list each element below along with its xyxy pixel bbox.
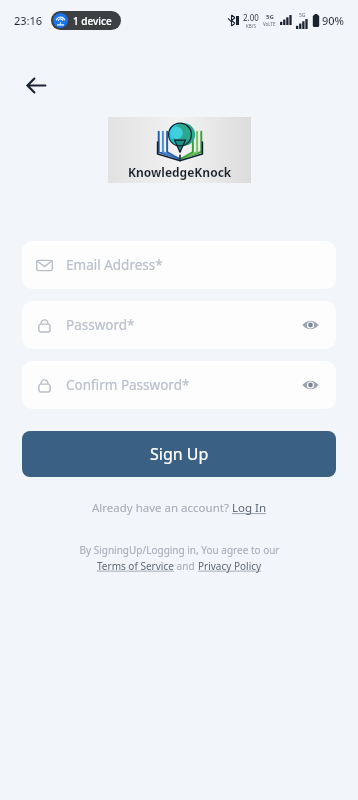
staticText: KnowledgeKnock bbox=[128, 164, 232, 180]
staticText: 2.00 bbox=[243, 12, 259, 23]
button[interactable]: Confirm Password* bbox=[22, 361, 336, 409]
staticText: Confirm Password* bbox=[66, 376, 190, 394]
staticText: and bbox=[174, 559, 198, 573]
staticText: 1 device bbox=[73, 14, 112, 28]
button[interactable]: Log In bbox=[232, 500, 267, 516]
button[interactable]: Terms of Service bbox=[97, 559, 174, 573]
button[interactable]: Show password bbox=[298, 373, 322, 397]
staticText: By SigningUp/Logging in, You agree to ou… bbox=[79, 543, 280, 557]
button[interactable]: Sign Up bbox=[22, 431, 336, 477]
button[interactable]: Password* bbox=[22, 301, 336, 349]
button[interactable]: Email Address* bbox=[22, 241, 336, 289]
staticText: 5G bbox=[266, 13, 274, 21]
button[interactable]: Back bbox=[16, 65, 56, 105]
staticText: Log In bbox=[232, 500, 267, 516]
staticText: 5G bbox=[299, 12, 306, 19]
staticText: VoLTE bbox=[263, 21, 276, 27]
staticText: Sign Up bbox=[150, 443, 209, 465]
staticText: 23:16 bbox=[14, 13, 43, 28]
staticText: Already have an account? bbox=[92, 500, 232, 516]
staticText: Email Address* bbox=[66, 256, 163, 274]
staticText: KB/S bbox=[246, 23, 256, 29]
button[interactable]: Show password bbox=[298, 313, 322, 337]
staticText: 90% bbox=[322, 13, 344, 28]
staticText: Privacy Policy bbox=[198, 559, 262, 573]
staticText: Terms of Service bbox=[97, 559, 174, 573]
staticText: Password* bbox=[66, 316, 135, 334]
button[interactable]: Privacy Policy bbox=[198, 559, 262, 573]
